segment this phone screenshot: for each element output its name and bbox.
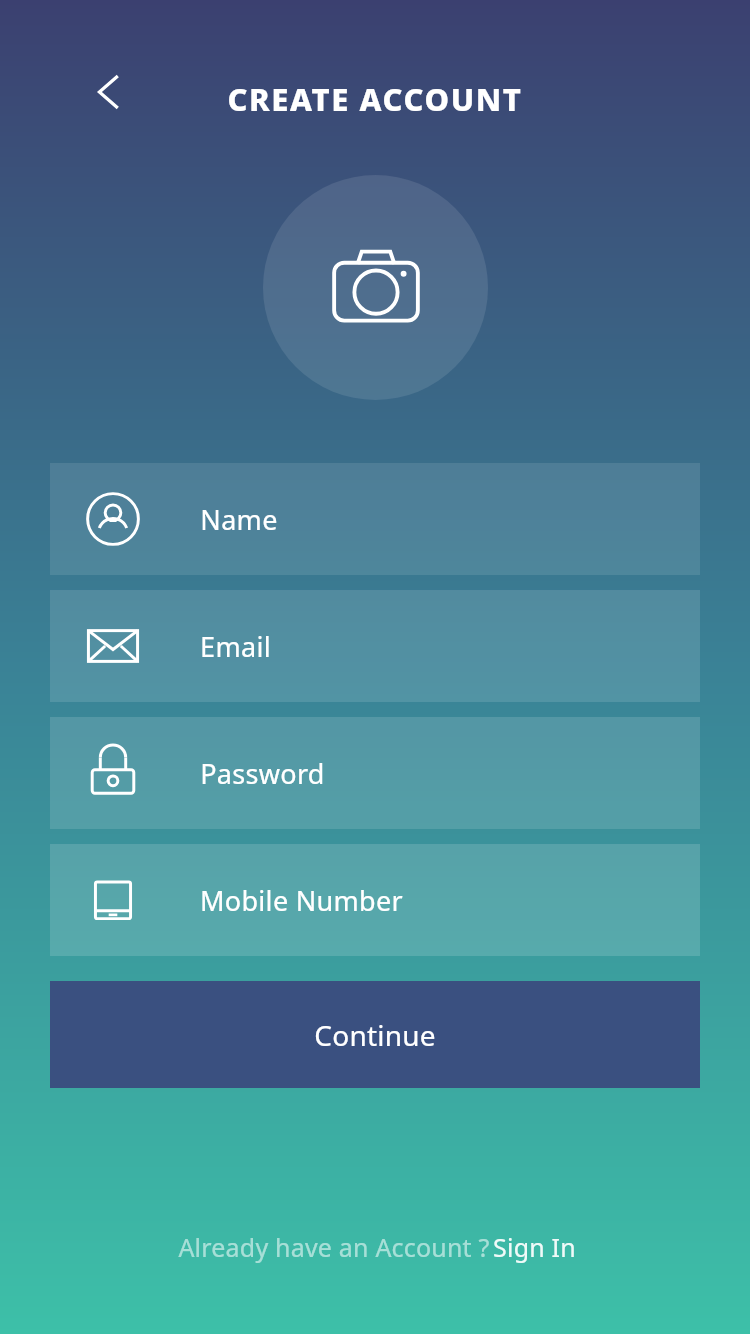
staticText: Name <box>200 501 278 538</box>
button[interactable]: Already have an Account ? <box>0 1200 750 1294</box>
button[interactable]: Mobile Number <box>50 844 700 956</box>
button[interactable]: Name <box>50 463 700 575</box>
button[interactable]: Password <box>50 717 700 829</box>
staticText: CREATE ACCOUNT <box>227 78 523 120</box>
staticText: Email <box>200 628 271 665</box>
staticText: Sign In <box>493 1230 576 1264</box>
staticText: Continue <box>314 1016 436 1054</box>
button[interactable]: Add profile photo <box>263 175 488 400</box>
button[interactable]: Continue <box>50 981 700 1088</box>
staticText: Already have an Account ? <box>175 1230 493 1264</box>
staticText: Password <box>200 755 325 792</box>
button[interactable]: Email <box>50 590 700 702</box>
staticText: Mobile Number <box>200 882 403 919</box>
button[interactable]: Back <box>75 58 143 126</box>
